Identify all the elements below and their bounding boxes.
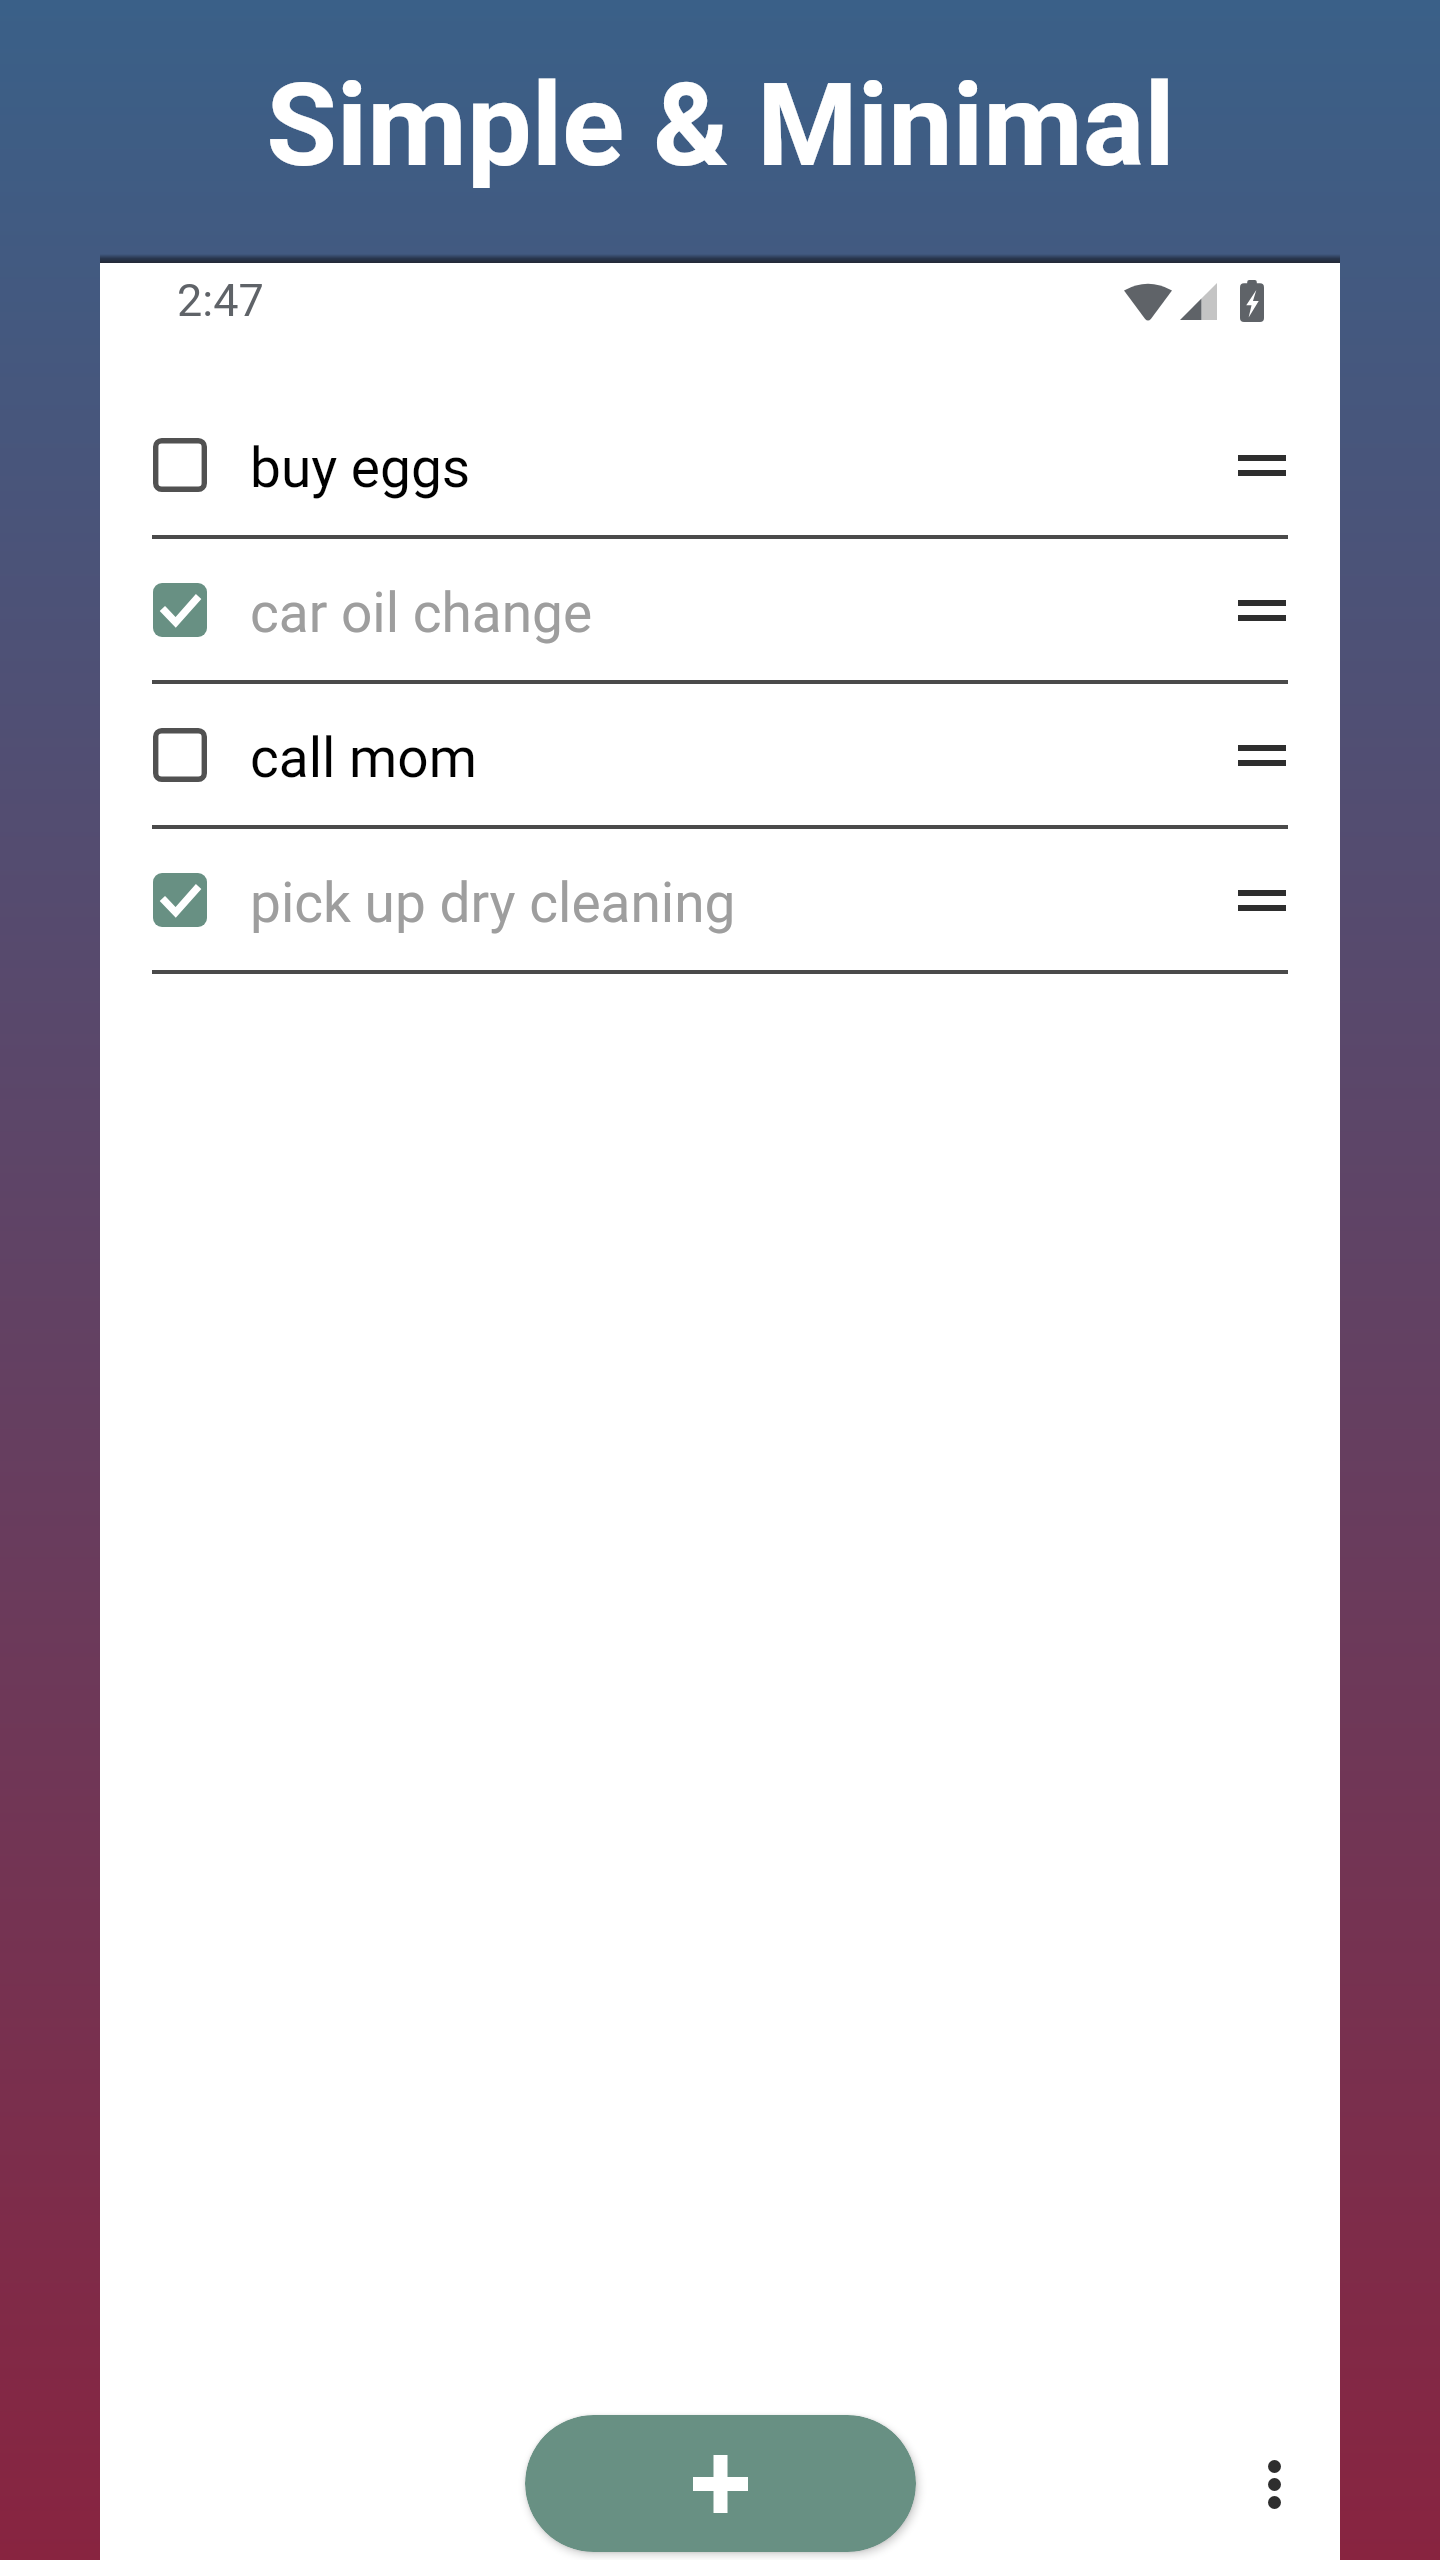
button[interactable]: Reorder "buy eggs" bbox=[1236, 437, 1288, 493]
button[interactable]: Mark "car oil change" as not done bbox=[100, 539, 1340, 684]
staticText: buy eggs bbox=[250, 436, 1236, 500]
button[interactable]: Mark "call mom" as done bbox=[100, 684, 1340, 829]
button[interactable]: Mark "pick up dry cleaning" as not done bbox=[100, 829, 1340, 974]
button[interactable]: Mark "pick up dry cleaning" as not done bbox=[152, 872, 207, 927]
staticText: call mom bbox=[250, 726, 1236, 790]
button[interactable]: More options bbox=[1220, 2424, 1328, 2544]
button[interactable]: Add task bbox=[525, 2415, 916, 2552]
staticText: car oil change bbox=[250, 581, 1236, 645]
staticText: pick up dry cleaning bbox=[250, 871, 1236, 935]
button[interactable]: Mark "buy eggs" as done bbox=[152, 437, 207, 492]
button[interactable]: Reorder "call mom" bbox=[1236, 727, 1288, 783]
staticText: Simple & Minimal bbox=[266, 58, 1175, 193]
button[interactable]: Mark "call mom" as done bbox=[152, 727, 207, 782]
button[interactable]: Reorder "pick up dry cleaning" bbox=[1236, 872, 1288, 928]
staticText: 2:47 bbox=[177, 274, 264, 327]
button[interactable]: Reorder "car oil change" bbox=[1236, 582, 1288, 638]
button[interactable]: Mark "car oil change" as not done bbox=[152, 582, 207, 637]
button[interactable]: Mark "buy eggs" as done bbox=[100, 394, 1340, 539]
